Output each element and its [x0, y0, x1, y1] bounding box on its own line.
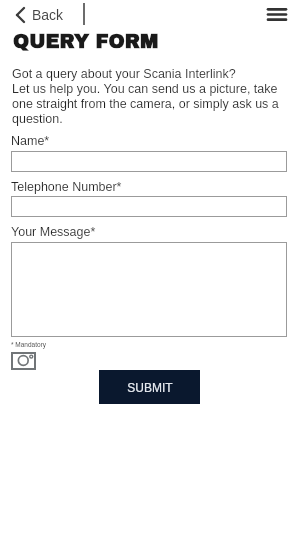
button[interactable]: Add a photo	[11, 352, 37, 371]
staticText: SUBMIT	[127, 381, 173, 394]
staticText: QUERY FORM	[13, 31, 159, 52]
button[interactable]	[11, 242, 287, 337]
staticText: Back	[32, 7, 64, 23]
staticText: Got a query about your Scania Interlink?…	[12, 67, 291, 125]
staticText: * Mandatory	[11, 341, 47, 348]
staticText: Telephone Number*	[11, 180, 122, 194]
button[interactable]: SUBMIT	[99, 370, 200, 404]
button[interactable]: Menu	[262, 1, 292, 28]
staticText: Your Message*	[11, 225, 96, 239]
button[interactable]	[11, 151, 287, 172]
button[interactable]: Back	[10, 1, 74, 28]
button[interactable]	[11, 196, 287, 217]
staticText: Name*	[11, 134, 50, 148]
